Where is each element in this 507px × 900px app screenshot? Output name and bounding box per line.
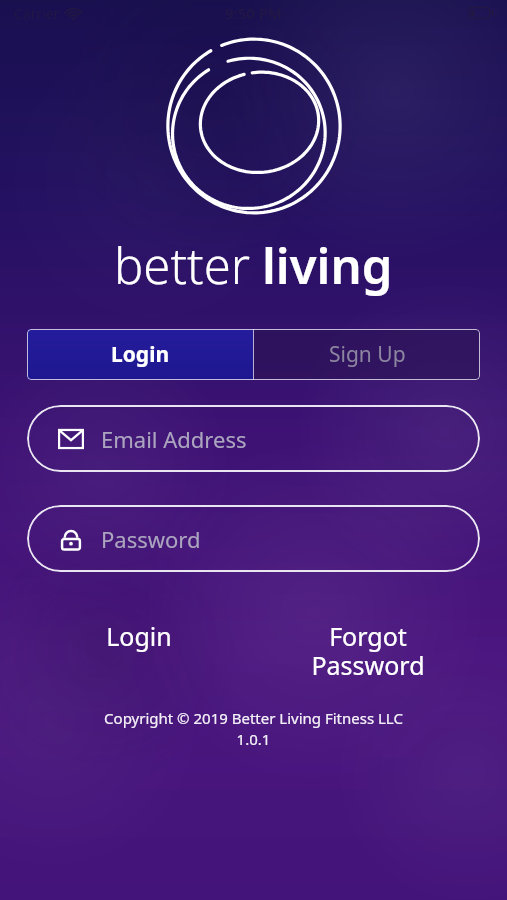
staticText: Login	[111, 340, 170, 369]
button[interactable]: Login	[27, 329, 253, 380]
staticText: Email Address	[101, 424, 247, 454]
button[interactable]: Login	[24, 619, 253, 653]
button[interactable]: Email	[27, 405, 480, 472]
staticText: living	[262, 232, 393, 299]
staticText: Login	[106, 619, 172, 653]
staticText: Password	[101, 524, 201, 554]
button[interactable]: Sign Up	[254, 329, 480, 380]
button[interactable]: Forgot Password	[253, 619, 483, 682]
staticText: Sign Up	[329, 340, 406, 369]
staticText: 9:50 PM	[225, 3, 282, 23]
staticText: Carrier	[14, 4, 60, 23]
staticText: Copyright © 2019 Better Living Fitness L…	[104, 708, 403, 750]
button[interactable]: Password	[27, 505, 480, 572]
staticText: Forgot Password	[311, 619, 425, 682]
staticText: better	[114, 232, 251, 299]
